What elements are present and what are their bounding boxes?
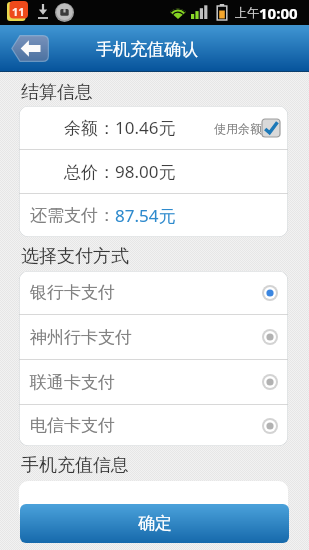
- staticText: 联通卡支付: [30, 372, 115, 393]
- staticText: 使用余额: [214, 121, 262, 136]
- staticText: 手机充值信息: [21, 454, 129, 477]
- button[interactable]: 银行卡支付: [19, 271, 288, 314]
- button[interactable]: 使用余额: [214, 119, 280, 137]
- staticText: 总价：98.00元: [64, 160, 176, 183]
- button[interactable]: Back: [11, 35, 49, 62]
- button[interactable]: 神州行卡支付: [19, 315, 288, 359]
- staticText: 确定: [138, 513, 172, 534]
- staticText: 手机充值确认: [96, 39, 198, 60]
- staticText: 10:00: [259, 3, 298, 23]
- button[interactable]: 联通卡支付: [19, 360, 288, 404]
- staticText: 87.54元: [115, 204, 176, 227]
- staticText: 结算信息: [21, 81, 93, 104]
- staticText: 银行卡支付: [30, 282, 115, 303]
- staticText: 神州行卡支付: [30, 327, 132, 348]
- staticText: 上午: [235, 5, 259, 20]
- staticText: 选择支付方式: [21, 245, 129, 268]
- staticText: 电信卡支付: [30, 415, 115, 436]
- button[interactable]: 确定: [20, 504, 289, 543]
- staticText: 11: [12, 4, 25, 19]
- button[interactable]: 电信卡支付: [19, 405, 288, 446]
- staticText: 还需支付：: [30, 205, 115, 226]
- staticText: 余额：10.46元: [64, 116, 176, 139]
